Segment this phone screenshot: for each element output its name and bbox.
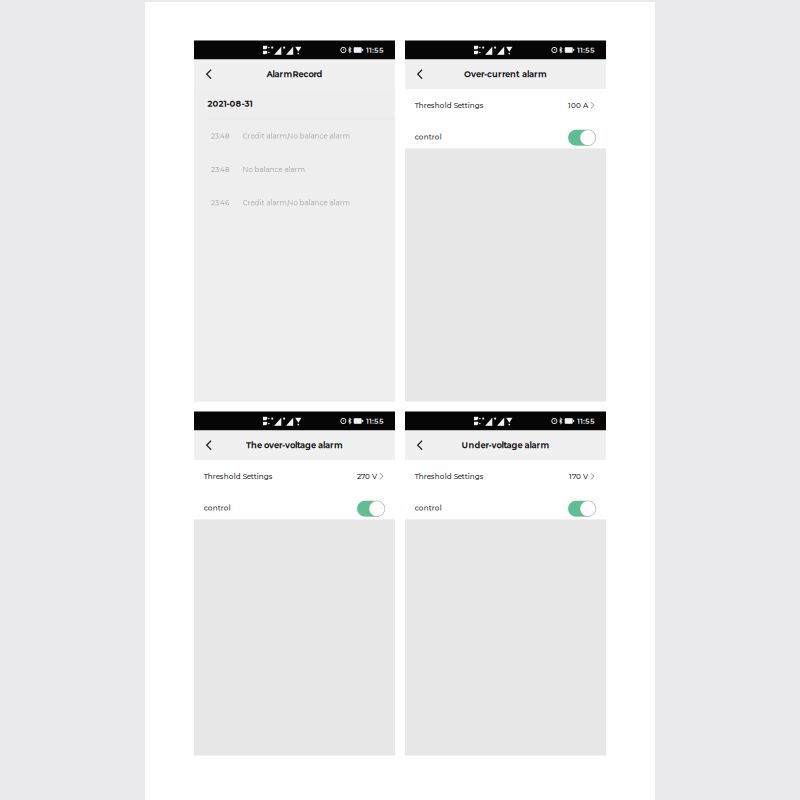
staticText: Over-current alarm	[464, 69, 547, 79]
staticText: Threshold Settings	[415, 101, 484, 110]
staticText: Credit alarm,No balance alarm	[242, 199, 349, 207]
staticText: control	[415, 132, 442, 141]
staticText: The over-voltage alarm	[246, 440, 343, 450]
staticText: Threshold Settings	[204, 472, 273, 481]
staticText: 100 A	[568, 101, 588, 110]
button[interactable]: 23:46	[194, 186, 395, 219]
staticText: AlarmRecord	[266, 69, 322, 79]
staticText: 11:55	[366, 45, 384, 55]
button[interactable]: Threshold Settings	[405, 460, 606, 493]
staticText: 11:55	[366, 416, 384, 426]
staticText: 23:46	[211, 199, 229, 207]
button[interactable]: Threshold Settings	[405, 89, 606, 122]
button[interactable]: control	[194, 493, 395, 519]
button[interactable]: Back	[405, 430, 435, 460]
staticText: control	[415, 503, 442, 512]
staticText: 2021-08-31	[207, 99, 252, 109]
staticText: 170 V	[569, 472, 588, 481]
staticText: control	[204, 503, 231, 512]
staticText: 23:48	[211, 165, 229, 174]
staticText: 11:55	[577, 416, 595, 426]
staticText: 270 V	[357, 472, 377, 481]
button[interactable]: 23:48	[194, 119, 395, 153]
button[interactable]: Threshold Settings	[194, 460, 395, 493]
button[interactable]: Back	[194, 59, 224, 89]
staticText: Threshold Settings	[415, 472, 484, 481]
staticText: No balance alarm	[242, 165, 304, 174]
staticText: 23:48	[211, 132, 229, 140]
staticText: Credit alarm,No balance alarm	[242, 132, 349, 140]
button[interactable]: control	[405, 493, 606, 519]
button[interactable]: 23:48	[194, 153, 395, 186]
staticText: 11:55	[577, 45, 595, 55]
button[interactable]: Back	[405, 59, 435, 89]
staticText: Under-voltage alarm	[461, 440, 549, 450]
button[interactable]: Back	[194, 430, 224, 460]
button[interactable]: control	[405, 122, 606, 148]
